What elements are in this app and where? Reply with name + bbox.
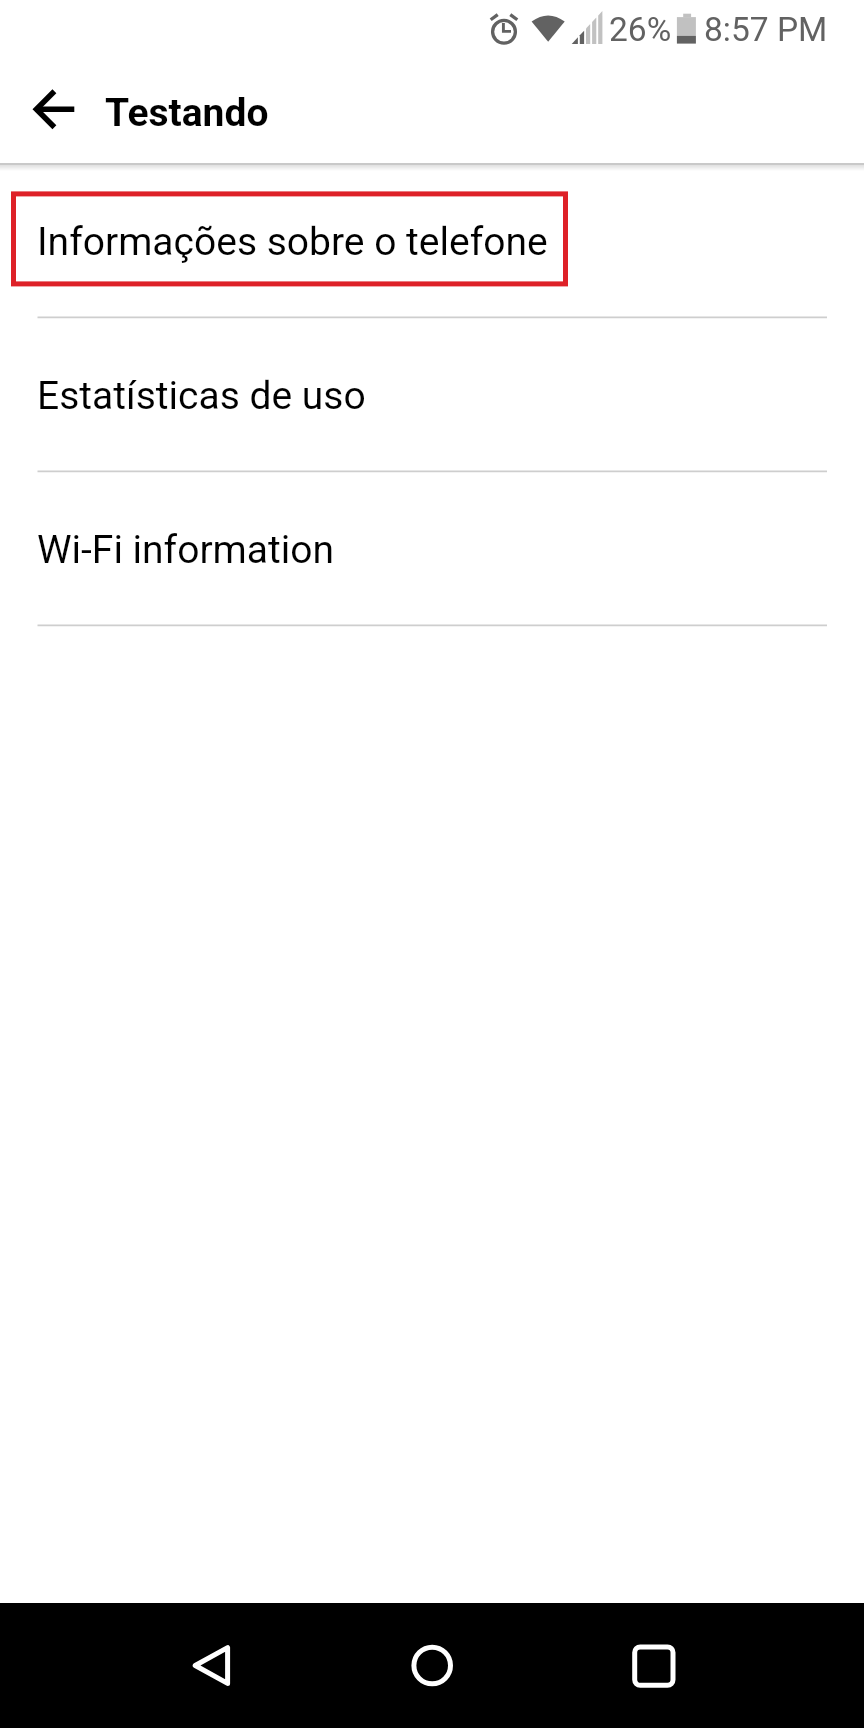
staticText: Testando — [105, 90, 269, 136]
staticText: Informações sobre o telefone — [37, 219, 548, 265]
staticText: Wi-Fi information — [37, 527, 335, 573]
staticText: 26% — [609, 10, 672, 49]
button[interactable]: Recent apps — [613, 1624, 694, 1705]
button[interactable]: Home — [392, 1624, 473, 1705]
button[interactable]: Back — [171, 1624, 252, 1705]
staticText: 8:57 PM — [704, 10, 828, 49]
button[interactable]: Navigate up — [14, 69, 93, 148]
button[interactable]: Wi-Fi information — [0, 472, 864, 626]
button[interactable]: Informações sobre o telefone — [0, 164, 864, 318]
staticText: Estatísticas de uso — [37, 373, 366, 419]
button[interactable]: Estatísticas de uso — [0, 318, 864, 472]
